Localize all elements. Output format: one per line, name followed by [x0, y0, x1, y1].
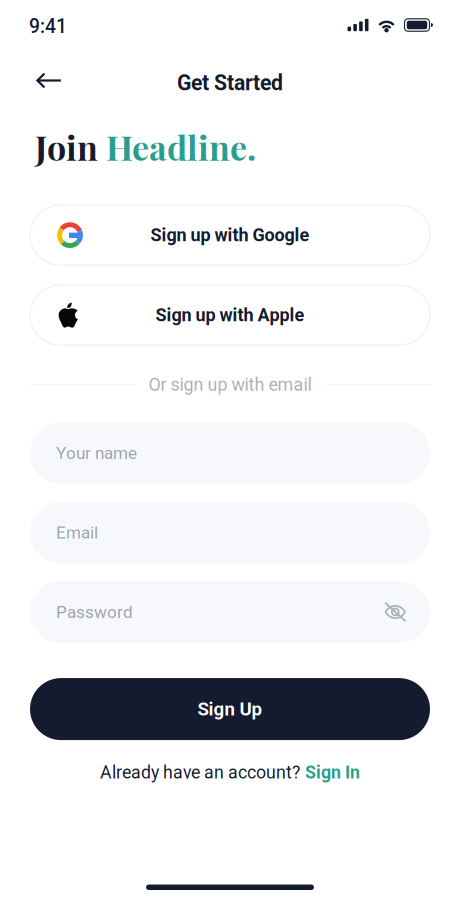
staticText: Get Started: [177, 71, 283, 95]
staticText: Already have an account?: [100, 762, 300, 783]
staticText: Sign up with Apple: [155, 305, 304, 326]
staticText: Your name: [56, 443, 137, 463]
staticText: Sign Up: [197, 698, 262, 720]
button[interactable]: Sign up with Google: [30, 205, 430, 265]
button[interactable]: Back: [27, 53, 71, 102]
button[interactable]: Sign Up: [30, 678, 430, 740]
button[interactable]: Show password: [373, 595, 406, 630]
button[interactable]: Sign up with Apple: [30, 285, 430, 345]
staticText: Sign up with Google: [150, 225, 309, 246]
staticText: 9:41: [29, 15, 67, 38]
staticText: Password: [56, 602, 133, 622]
staticText: Join: [35, 124, 106, 169]
button[interactable]: Sign In: [305, 762, 360, 783]
staticText: Headline.: [106, 124, 256, 169]
staticText: Email: [56, 523, 98, 543]
staticText: Sign In: [305, 762, 360, 783]
staticText: Or sign up with email: [148, 374, 311, 395]
